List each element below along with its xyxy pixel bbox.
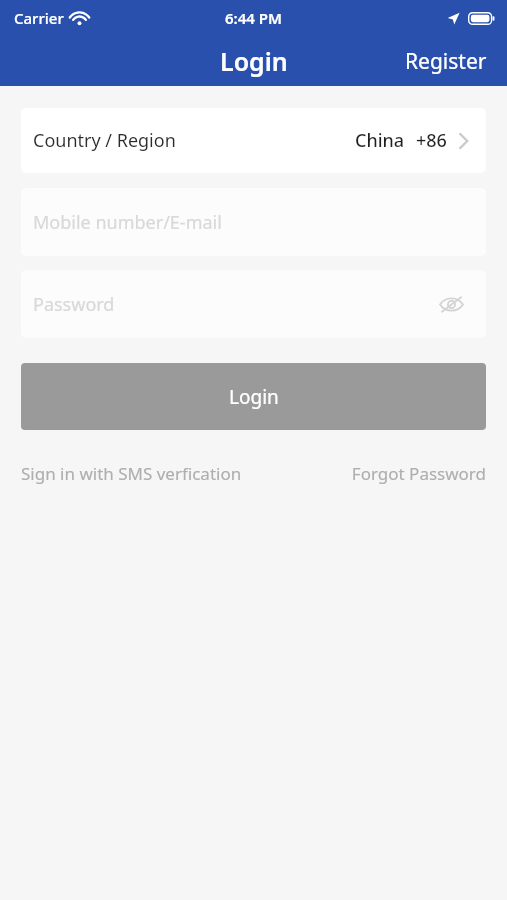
staticText: Register [405, 47, 487, 76]
staticText: Password [33, 292, 115, 317]
staticText: Sign in with SMS verfication [21, 462, 242, 485]
button[interactable]: Show password [435, 292, 468, 317]
staticText: Login [229, 384, 279, 410]
staticText: Carrier [14, 8, 64, 28]
button[interactable]: Mobile number/E-mail [21, 188, 486, 256]
other: Location [447, 12, 460, 25]
button[interactable]: Login [210, 40, 298, 82]
staticText: China [355, 128, 405, 153]
button[interactable]: Forgot Password [351, 456, 486, 491]
button[interactable]: Register [391, 41, 507, 82]
other: Battery [468, 12, 495, 25]
button[interactable]: Login [21, 363, 486, 430]
staticText: Forgot Password [351, 462, 486, 485]
button[interactable]: Country / Region [21, 108, 486, 173]
button[interactable]: Password [21, 270, 486, 338]
staticText: Mobile number/E-mail [33, 210, 222, 235]
button[interactable]: Sign in with SMS verfication [21, 456, 242, 491]
staticText: Login [220, 44, 288, 78]
other: Wi-Fi [71, 12, 88, 25]
staticText: +86 [416, 128, 447, 153]
staticText: 6:44 PM [225, 8, 282, 28]
staticText: Country / Region [33, 128, 176, 153]
